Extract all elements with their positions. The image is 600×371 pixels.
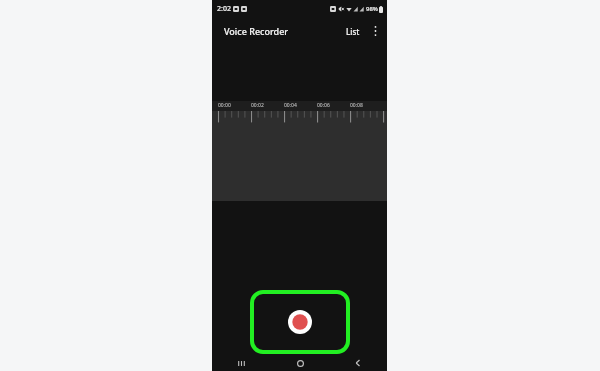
- staticText: Voice Recorder: [224, 25, 289, 37]
- button[interactable]: More options: [365, 21, 385, 41]
- button[interactable]: Back: [329, 355, 387, 371]
- button[interactable]: List: [341, 22, 365, 41]
- staticText: 2:02: [217, 4, 231, 14]
- staticText: 00:02: [251, 102, 264, 109]
- staticText: 00:06: [317, 102, 330, 109]
- button[interactable]: Record: [250, 290, 350, 354]
- staticText: 00:04: [284, 102, 297, 109]
- staticText: 00:08: [350, 102, 363, 109]
- button[interactable]: Recents: [212, 355, 271, 371]
- staticText: 00:00: [218, 102, 231, 109]
- button[interactable]: Home: [271, 355, 329, 371]
- staticText: 98%: [366, 5, 378, 13]
- staticText: List: [346, 26, 360, 37]
